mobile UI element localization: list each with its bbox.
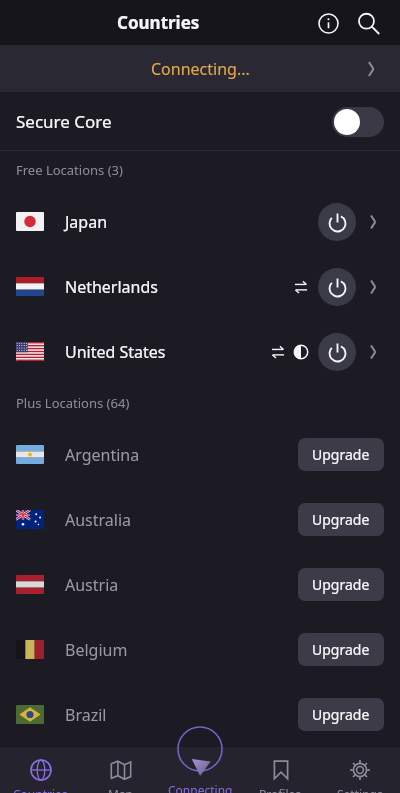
button[interactable]: Netherlands [0,254,400,319]
button[interactable]: Search [348,3,388,43]
button[interactable]: Upgrade [298,698,384,731]
staticText: Netherlands [65,276,158,298]
button[interactable]: Upgrade [298,503,384,536]
staticText: Connecting... [151,58,250,80]
staticText: Plus Locations (64) [16,394,130,412]
button[interactable]: Brazil [0,682,400,747]
staticText: Countries [13,786,68,793]
button[interactable]: Argentina [0,422,400,487]
button[interactable]: Secure Core [0,93,400,150]
staticText: Brazil [65,704,107,726]
staticText: Upgrade [312,640,370,659]
button[interactable]: Japan [0,189,400,254]
staticText: Upgrade [312,705,370,724]
staticText: Settings [337,786,383,793]
staticText: Upgrade [312,445,370,464]
staticText: Upgrade [312,575,370,594]
button[interactable]: Connect [318,203,356,241]
button[interactable]: Upgrade [298,633,384,666]
button[interactable]: United States [0,319,400,384]
staticText: United States [65,341,166,363]
button[interactable]: Connecting [160,747,240,793]
staticText: Japan [65,211,108,233]
button[interactable]: Austria [0,552,400,617]
staticText: Connecting [168,782,233,793]
button[interactable]: Countries [0,747,80,793]
button[interactable]: Info [308,3,348,43]
button[interactable]: Settings [320,747,400,793]
button[interactable]: Connect [318,268,356,306]
staticText: Upgrade [312,510,370,529]
staticText: Map [108,786,133,793]
staticText: Profiles [259,786,302,793]
button[interactable]: Australia [0,487,400,552]
button[interactable]: Connecting... [0,45,400,92]
staticText: Secure Core [16,110,112,133]
staticText: Belgium [65,639,128,661]
button[interactable]: Upgrade [298,568,384,601]
staticText: Australia [65,509,132,531]
staticText: Free Locations (3) [16,161,123,179]
staticText: Countries [117,11,200,34]
button[interactable]: Connect [318,333,356,371]
button[interactable]: Upgrade [298,438,384,471]
button[interactable]: Belgium [0,617,400,682]
button[interactable]: Profiles [240,747,320,793]
staticText: Argentina [65,444,140,466]
button[interactable]: Map [80,747,160,793]
staticText: Austria [65,574,119,596]
